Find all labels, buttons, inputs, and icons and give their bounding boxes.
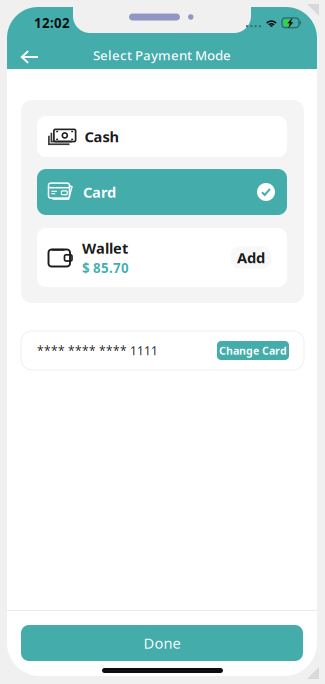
button[interactable]: Back: [10, 42, 50, 72]
staticText: Wallet: [82, 238, 128, 258]
staticText: Select Payment Mode: [93, 46, 231, 64]
button[interactable]: Cash: [37, 116, 287, 157]
button[interactable]: Done: [21, 625, 303, 661]
staticText: 12:02: [34, 14, 70, 32]
staticText: $ 85.70: [82, 259, 129, 277]
button[interactable]: Change Card: [217, 341, 289, 360]
button[interactable]: Wallet: [37, 228, 287, 287]
staticText: Change Card: [219, 343, 287, 358]
staticText: Cash: [85, 127, 120, 146]
button[interactable]: Card: [37, 169, 287, 215]
staticText: Card: [83, 182, 116, 202]
staticText: Done: [143, 633, 180, 653]
staticText: **** **** **** 1111: [37, 342, 158, 358]
staticText: Add: [237, 248, 265, 267]
